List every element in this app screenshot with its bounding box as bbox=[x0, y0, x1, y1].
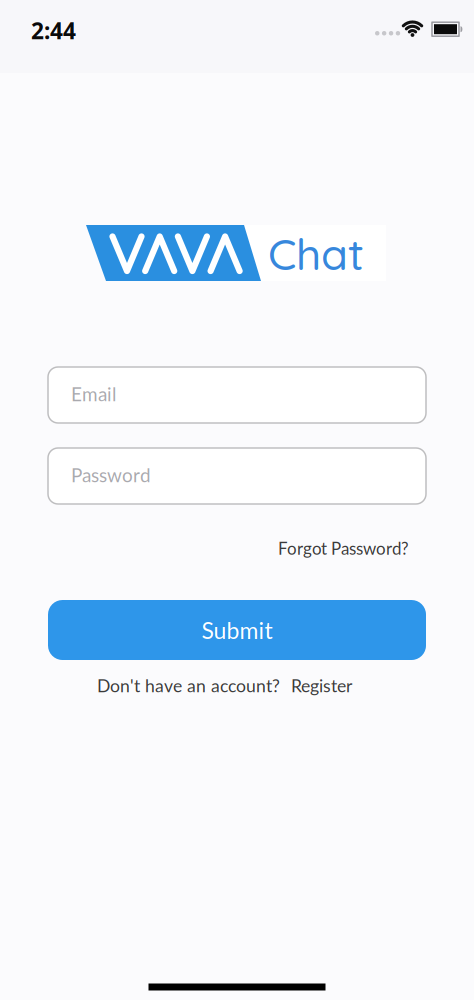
button[interactable]: Register bbox=[291, 675, 352, 696]
button[interactable]: Password bbox=[48, 448, 426, 504]
staticText: Email bbox=[71, 383, 116, 405]
staticText: Forgot Password? bbox=[278, 538, 409, 558]
staticText: Register bbox=[291, 675, 352, 696]
button[interactable]: Forgot Password? bbox=[278, 538, 409, 558]
staticText: Don't have an account? bbox=[97, 675, 280, 696]
staticText: Chat bbox=[268, 226, 364, 281]
staticText: Password bbox=[71, 464, 151, 486]
staticText: 2:44 bbox=[31, 15, 76, 46]
button[interactable]: Submit bbox=[48, 600, 426, 660]
button[interactable]: Email bbox=[48, 367, 426, 423]
staticText: Submit bbox=[201, 616, 272, 644]
